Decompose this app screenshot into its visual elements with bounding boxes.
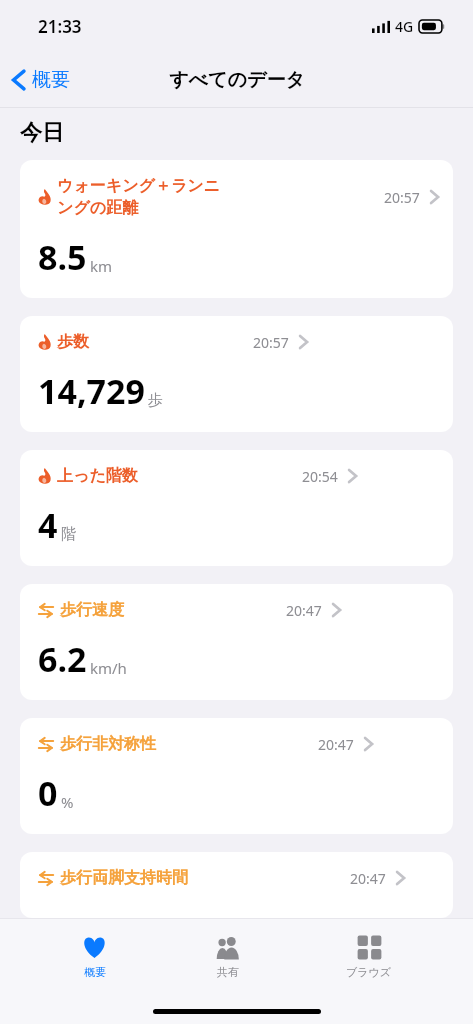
staticText: 上った階数 <box>57 466 138 486</box>
staticText: 20:47 <box>286 601 322 620</box>
button[interactable]: 概要 <box>57 931 132 983</box>
staticText: 20:47 <box>318 735 354 754</box>
staticText: 20:47 <box>350 869 386 888</box>
button[interactable]: ブラウズ <box>322 931 416 983</box>
staticText: 8.5 <box>38 234 87 280</box>
button[interactable]: 歩行速度 <box>20 584 453 700</box>
button[interactable]: 歩数 <box>20 316 453 432</box>
staticText: 今日 <box>20 119 64 147</box>
staticText: 歩行速度 <box>60 600 124 620</box>
button[interactable]: 共有 <box>190 931 265 983</box>
staticText: ブラウズ <box>346 965 392 979</box>
staticText: 概要 <box>32 68 70 92</box>
staticText: % <box>61 792 74 812</box>
staticText: 20:57 <box>253 333 289 352</box>
staticText: 歩行両脚支持時間 <box>60 868 188 888</box>
button[interactable]: 概要 <box>0 62 80 98</box>
staticText: 0 <box>38 770 58 816</box>
staticText: 14,729 <box>38 368 145 414</box>
staticText: km <box>90 256 113 276</box>
staticText: すべてのデータ <box>169 68 305 92</box>
staticText: 歩数 <box>57 332 89 352</box>
staticText: 20:57 <box>384 188 420 207</box>
staticText: 20:54 <box>302 467 338 486</box>
staticText: 歩行非対称性 <box>60 734 156 754</box>
staticText: 階 <box>61 525 76 544</box>
staticText: 概要 <box>84 965 106 979</box>
staticText: 6.2 <box>38 636 87 682</box>
button[interactable]: ウォーキング＋ランニングの距離 <box>20 160 453 298</box>
staticText: 共有 <box>217 965 239 979</box>
staticText: 21:33 <box>38 15 82 38</box>
staticText: km/h <box>90 658 127 678</box>
button[interactable]: 歩行非対称性 <box>20 718 453 834</box>
button[interactable]: 歩行両脚支持時間 <box>20 852 453 918</box>
staticText: ウォーキング＋ランニングの距離 <box>57 176 220 218</box>
button[interactable]: 上った階数 <box>20 450 453 566</box>
staticText: 歩 <box>148 391 163 410</box>
staticText: 4G <box>395 17 414 36</box>
staticText: 4 <box>38 502 58 548</box>
